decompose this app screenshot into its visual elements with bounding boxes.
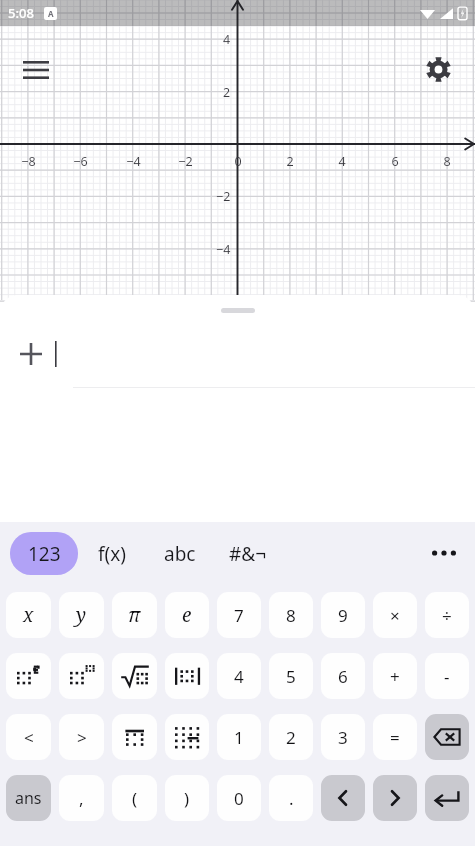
button[interactable]: y (59, 592, 104, 638)
button[interactable]: Power (59, 653, 104, 699)
staticText: f(x) (98, 541, 126, 567)
staticText: 4 (338, 153, 346, 170)
staticText: 2 (286, 726, 296, 749)
staticText: 4 (223, 31, 231, 48)
button[interactable] (52, 321, 475, 387)
staticText: 3 (338, 726, 348, 749)
button[interactable]: #&¬ (218, 532, 278, 575)
button[interactable]: < (6, 714, 51, 760)
staticText: 2 (223, 84, 231, 101)
staticText: 6 (338, 665, 348, 688)
button[interactable]: f(x) (82, 532, 142, 575)
staticText: - (444, 665, 450, 688)
staticText: ) (184, 787, 190, 810)
button[interactable]: Settings (416, 47, 460, 91)
button[interactable]: 123 (10, 532, 78, 575)
button[interactable]: 7 (217, 592, 261, 638)
button[interactable]: 2 (269, 714, 313, 760)
staticText: 2 (286, 153, 294, 170)
button[interactable]: abc (150, 532, 210, 575)
staticText: = (390, 726, 400, 749)
button[interactable]: Matrix (165, 714, 209, 760)
staticText: × (390, 604, 400, 627)
staticText: < (24, 726, 34, 749)
button[interactable]: 0 (217, 775, 261, 821)
staticText: 7 (234, 604, 244, 627)
staticText: −4 (126, 153, 141, 170)
button[interactable]: 3 (321, 714, 365, 760)
button[interactable]: ans (6, 775, 51, 821)
staticText: e (182, 602, 192, 628)
staticText: 123 (28, 541, 61, 567)
button[interactable]: Square (6, 653, 51, 699)
button[interactable]: More (423, 532, 465, 574)
staticText: x (23, 602, 34, 628)
button[interactable]: Move left (321, 775, 365, 821)
button[interactable]: Square root (112, 653, 157, 699)
button[interactable]: Backspace (425, 714, 469, 760)
button[interactable]: . (269, 775, 313, 821)
button[interactable]: Enter (425, 775, 469, 821)
button[interactable]: ) (165, 775, 209, 821)
staticText: ( (132, 787, 138, 810)
button[interactable]: Fraction (112, 714, 157, 760)
button[interactable]: ( (112, 775, 157, 821)
staticText: ÷ (442, 604, 452, 627)
staticText: , (79, 787, 84, 810)
button[interactable]: Menu (14, 48, 58, 92)
button[interactable]: 4 (217, 653, 261, 699)
staticText: . (289, 787, 294, 810)
staticText: 1 (234, 726, 244, 749)
staticText: #&¬ (229, 541, 267, 567)
staticText: ans (15, 787, 42, 809)
button[interactable]: π (112, 592, 157, 638)
button[interactable]: 1 (217, 714, 261, 760)
staticText: 6 (391, 153, 399, 170)
staticText: −4 (216, 241, 231, 258)
staticText: 9 (338, 604, 348, 627)
staticText: abc (164, 541, 196, 567)
staticText: −2 (216, 188, 231, 205)
button[interactable]: × (373, 592, 417, 638)
button[interactable]: ÷ (425, 592, 469, 638)
button[interactable]: 8 (269, 592, 313, 638)
button[interactable]: Absolute value (165, 653, 209, 699)
button[interactable]: 5 (269, 653, 313, 699)
staticText: −6 (73, 153, 88, 170)
button[interactable]: x (6, 592, 51, 638)
button[interactable]: Move right (373, 775, 417, 821)
button[interactable]: e (165, 592, 209, 638)
button[interactable]: + (373, 653, 417, 699)
staticText: 5:08 (8, 4, 34, 22)
staticText: A (48, 8, 54, 19)
staticText: 8 (443, 153, 451, 170)
staticText: > (77, 726, 87, 749)
button[interactable]: = (373, 714, 417, 760)
staticText: −2 (178, 153, 193, 170)
staticText: 8 (286, 604, 296, 627)
button[interactable]: , (59, 775, 104, 821)
button[interactable]: 6 (321, 653, 365, 699)
button[interactable]: Add expression (10, 333, 52, 375)
staticText: 0 (234, 153, 242, 170)
staticText: π (128, 602, 141, 628)
staticText: −8 (21, 153, 36, 170)
button[interactable]: 9 (321, 592, 365, 638)
staticText: 5 (286, 665, 296, 688)
staticText: 0 (234, 787, 244, 810)
button[interactable]: - (425, 653, 469, 699)
staticText: + (390, 665, 400, 688)
staticText: y (76, 602, 87, 628)
staticText: 4 (234, 665, 244, 688)
button[interactable]: > (59, 714, 104, 760)
